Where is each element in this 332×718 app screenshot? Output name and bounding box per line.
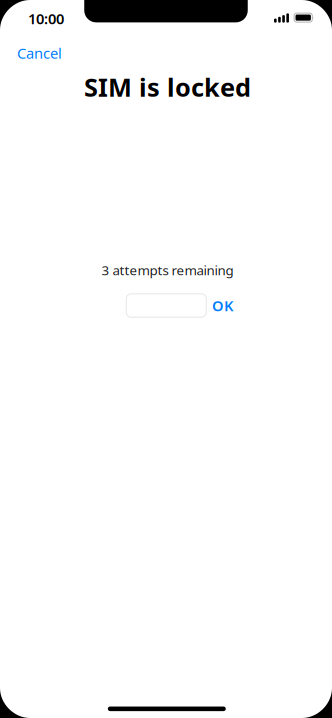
button[interactable]: Cancel — [17, 38, 67, 68]
button[interactable]: PIN — [126, 294, 206, 317]
staticText: 3 attempts remaining — [101, 261, 233, 279]
staticText: 10:00 — [28, 9, 64, 28]
staticText: Cancel — [17, 43, 62, 63]
staticText: SIM is locked — [84, 70, 251, 104]
staticText: OK — [212, 296, 233, 315]
button[interactable]: OK — [209, 293, 235, 317]
